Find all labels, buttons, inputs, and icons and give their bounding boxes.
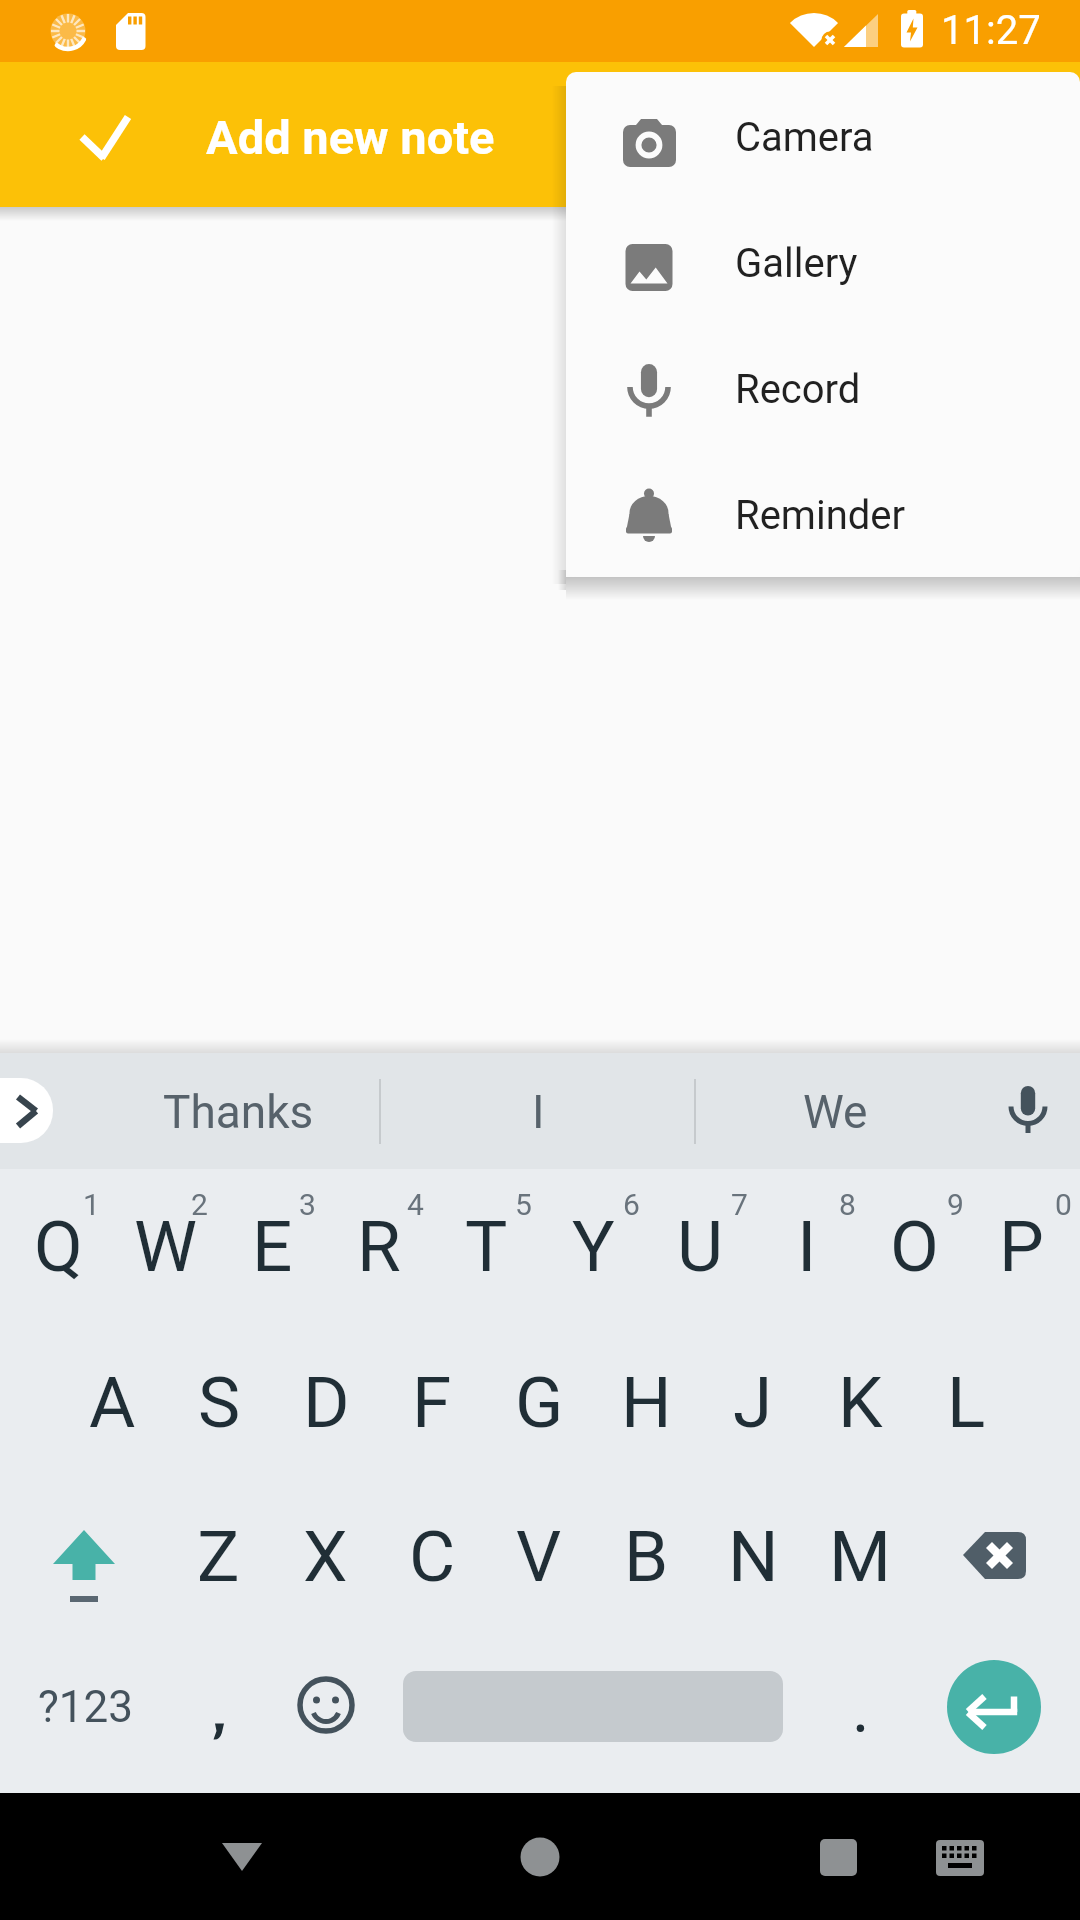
button[interactable]: ?123 [5,1662,165,1752]
button[interactable]: We [735,1077,935,1147]
button[interactable] [62,98,146,176]
staticText: J [733,1361,773,1444]
staticText: S [198,1361,241,1444]
button[interactable]: M [806,1496,914,1616]
button[interactable]: I [438,1077,638,1147]
button[interactable]: U [646,1186,754,1306]
staticText: E [252,1205,293,1288]
button[interactable]: Camera [566,74,1080,200]
staticText: Reminder [735,492,906,539]
button[interactable] [500,1793,580,1920]
button[interactable] [798,1793,878,1920]
staticText: Record [735,366,861,413]
button[interactable]: A [58,1342,166,1462]
staticText: Q [34,1205,83,1288]
staticText: P [999,1205,1044,1288]
staticText: 7 [731,1187,748,1222]
button[interactable]: X [271,1496,379,1616]
staticText: ?123 [38,1681,133,1733]
staticText: H [621,1361,672,1444]
staticText: A [89,1361,136,1444]
button[interactable]: N [699,1496,807,1616]
button[interactable]: W [111,1186,219,1306]
staticText: D [303,1361,350,1444]
button[interactable]: Reminder [566,452,1080,577]
button[interactable] [20,1500,148,1612]
staticText: L [947,1361,986,1444]
staticText: Thanks [163,1085,314,1139]
button[interactable]: H [592,1342,700,1462]
button[interactable]: Thanks [108,1077,368,1147]
staticText: 8 [839,1187,856,1222]
button[interactable]: T [432,1186,540,1306]
staticText: W [134,1205,197,1288]
button[interactable]: R [325,1186,433,1306]
button[interactable]: G [485,1342,593,1462]
staticText: I [797,1205,817,1288]
button[interactable] [162,1632,270,1782]
button[interactable] [810,1632,918,1782]
staticText: 4 [407,1187,424,1222]
button[interactable]: F [378,1342,486,1462]
staticText: O [890,1205,939,1288]
staticText: U [677,1205,724,1288]
button[interactable]: J [699,1342,807,1462]
staticText: Z [197,1515,240,1598]
staticText: Camera [735,114,874,161]
button[interactable]: E [218,1186,326,1306]
button[interactable]: O [860,1186,968,1306]
button[interactable]: Y [539,1186,647,1306]
staticText: I [532,1085,545,1139]
button[interactable] [940,1500,1060,1612]
button[interactable]: B [592,1496,700,1616]
staticText: B [624,1515,669,1598]
staticText: Y [572,1205,615,1288]
button[interactable] [270,1653,378,1761]
button[interactable]: D [272,1342,380,1462]
button[interactable] [947,1660,1041,1754]
staticText: 2 [191,1187,208,1222]
staticText: Gallery [735,240,858,287]
staticText: 6 [623,1187,640,1222]
button[interactable]: K [806,1342,914,1462]
staticText: X [303,1515,348,1598]
staticText: 0 [1055,1187,1072,1222]
staticText: K [838,1361,883,1444]
button[interactable] [202,1793,282,1920]
button[interactable]: P [967,1186,1075,1306]
staticText: We [803,1085,868,1139]
button[interactable]: Z [164,1496,272,1616]
staticText: N [728,1515,779,1598]
staticText: T [465,1205,508,1288]
button[interactable] [920,1793,1000,1920]
button[interactable]: Q [4,1186,112,1306]
staticText: 11:27 [941,7,1041,54]
staticText: F [412,1361,452,1444]
staticText: Add new note [206,110,495,164]
staticText: R [357,1205,401,1288]
staticText: 5 [515,1187,532,1222]
staticText: V [516,1515,562,1598]
button[interactable]: Gallery [566,200,1080,326]
staticText: C [409,1515,456,1598]
staticText: M [829,1515,891,1598]
button[interactable]: C [378,1496,486,1616]
button[interactable]: S [165,1342,273,1462]
staticText: G [515,1361,564,1444]
staticText: 9 [947,1187,964,1222]
button[interactable]: L [912,1342,1020,1462]
button[interactable]: Record [566,326,1080,452]
button[interactable]: V [485,1496,593,1616]
staticText: 1 [83,1187,100,1222]
staticText: 3 [299,1187,316,1222]
button[interactable] [0,1078,53,1143]
button[interactable]: I [753,1186,861,1306]
